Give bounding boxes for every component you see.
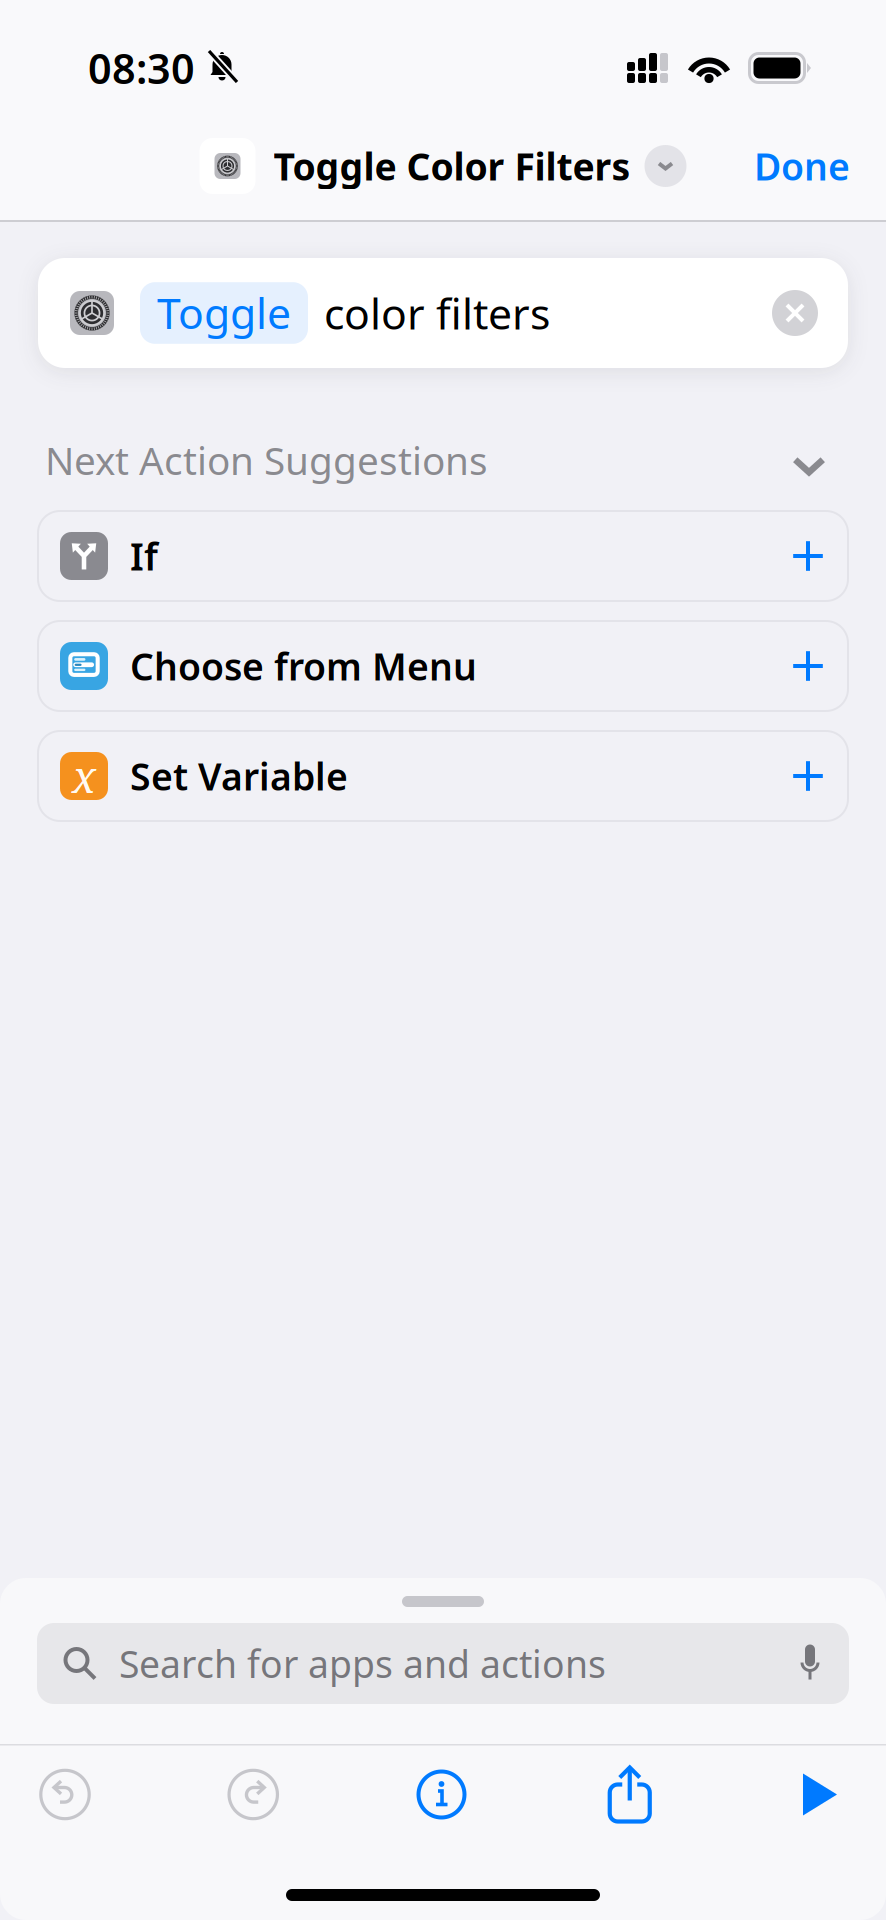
button[interactable]: If [38,511,848,601]
button[interactable]: Run shortcut [753,1753,883,1835]
button[interactable]: Share [565,1753,695,1835]
staticText: Set Variable [130,751,348,801]
button[interactable]: Choose from Menu [38,621,848,711]
button[interactable]: Redo [188,1753,318,1835]
staticText: Done [754,141,850,191]
button[interactable]: Shortcut details [376,1753,506,1835]
button[interactable]: Undo [0,1753,130,1835]
staticText: Toggle [157,284,291,341]
button[interactable]: Search for apps and actions [37,1623,849,1704]
button[interactable]: Toggle Color Filters [199,138,686,194]
button[interactable]: Done [754,141,850,191]
button[interactable]: Collapse Next Action Suggestions [776,436,842,483]
staticText: Next Action Suggestions [45,434,488,486]
staticText: Toggle Color Filters [273,141,630,191]
staticText: 08:30 [88,41,195,95]
staticText: Choose from Menu [130,641,477,691]
staticText: Search for apps and actions [119,1639,606,1688]
staticText: If [130,531,158,581]
button[interactable]: x [38,731,848,821]
staticText: color filters [324,285,550,341]
staticText: x [72,746,96,806]
button[interactable]: Remove action [772,290,818,336]
